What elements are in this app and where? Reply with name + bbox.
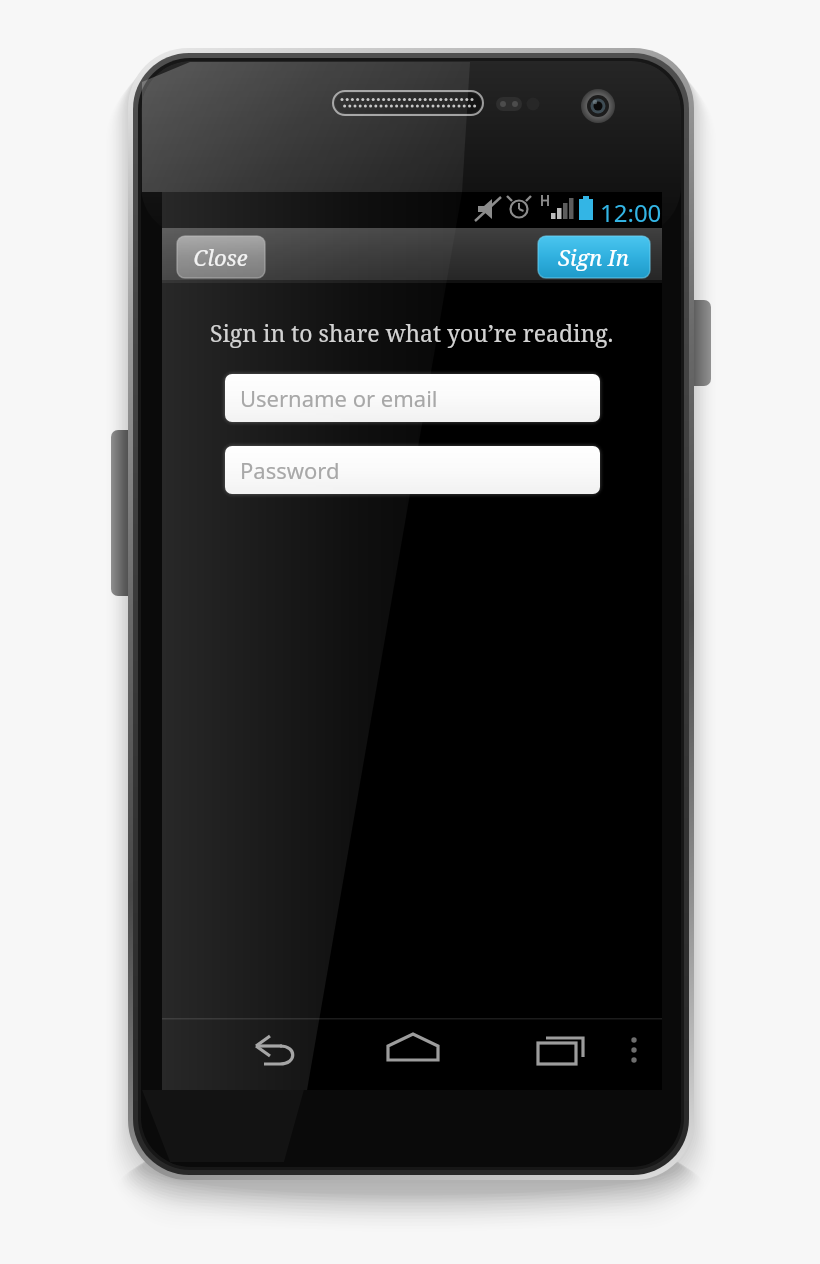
button[interactable]: Username or email (225, 374, 600, 422)
button[interactable]: Back (244, 1020, 304, 1080)
button[interactable]: Home (383, 1020, 443, 1080)
button[interactable]: Close (177, 236, 265, 278)
button[interactable]: Password (225, 446, 600, 494)
button[interactable]: Recent apps (522, 1020, 582, 1080)
button[interactable]: Sign In (538, 236, 650, 278)
button[interactable]: More options (610, 1020, 658, 1080)
